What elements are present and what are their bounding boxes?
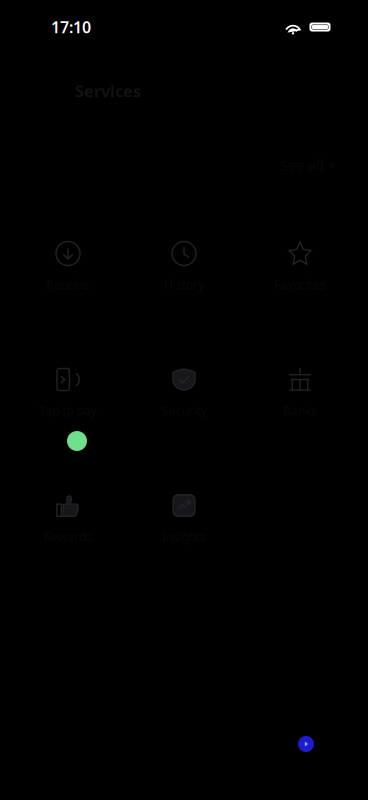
button[interactable]: Insights [129,488,239,548]
button[interactable]: Receive [13,236,123,296]
button[interactable]: History [129,236,239,296]
button[interactable]: See all [277,158,339,172]
button[interactable]: Banks [245,362,355,422]
button[interactable]: Tap to pay [13,362,123,422]
staticText: 17:10 [51,16,91,38]
button[interactable]: Rewards [13,488,123,548]
button[interactable]: Security [129,362,239,422]
button[interactable]: Favorites [245,236,355,296]
staticText: Services [75,80,141,102]
button[interactable]: Assistant [293,731,319,757]
